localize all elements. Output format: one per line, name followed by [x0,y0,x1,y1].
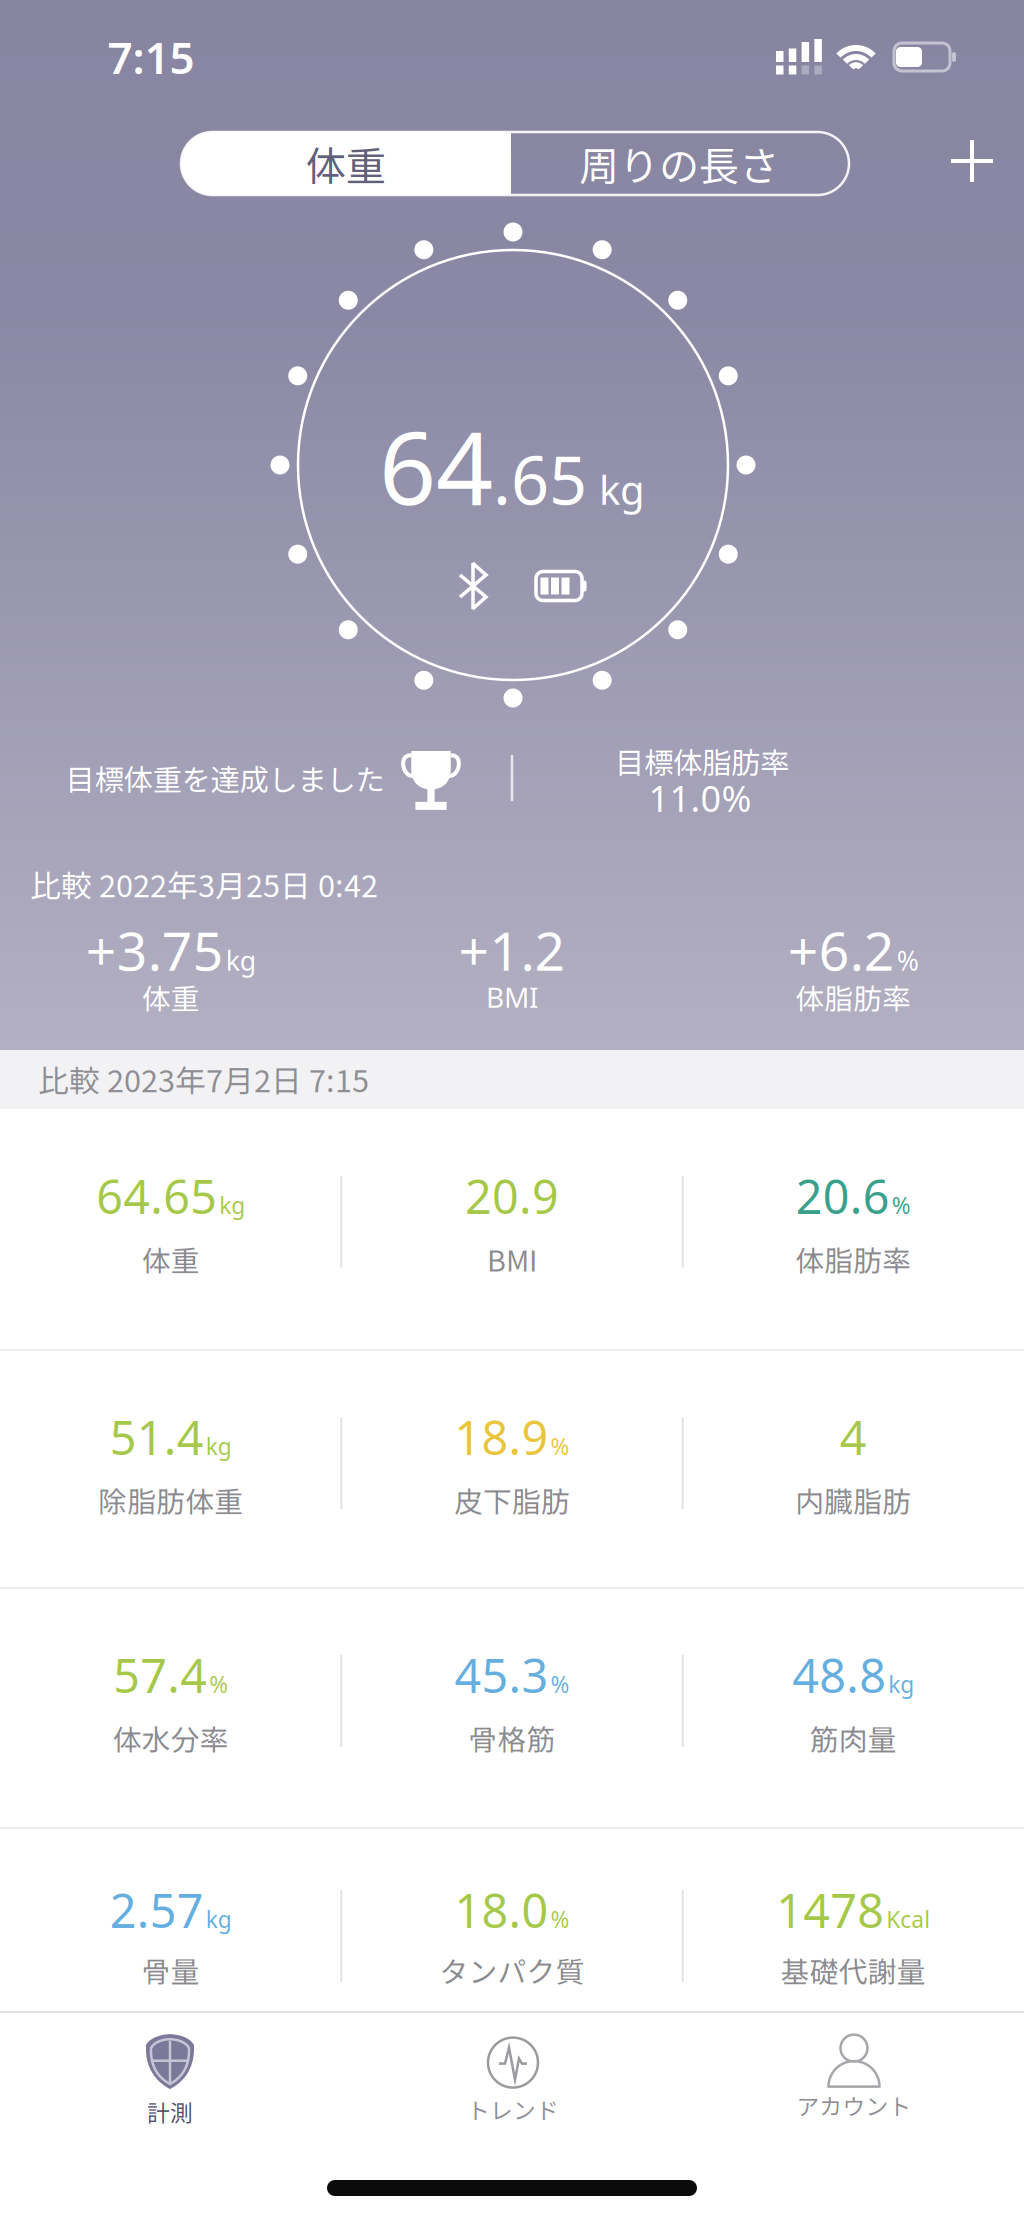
staticText: トレンド [467,2093,559,2125]
staticText: Kcal [886,1904,930,1934]
staticText: kg [888,1669,914,1699]
button[interactable]: アカウント [739,2018,969,2138]
staticText: 体脂肪率 [795,1238,911,1280]
staticText: % [550,1669,569,1699]
button[interactable]: 体重 [181,132,511,195]
staticText: 20.9 [465,1165,559,1227]
staticText: kg [599,463,645,516]
staticText: 20.6 [796,1165,890,1227]
staticText: 目標体脂肪率 [615,740,789,782]
staticText: 11.0% [648,774,751,822]
staticText: 骨格筋 [468,1717,555,1759]
button[interactable]: トレンド [398,2021,628,2141]
staticText: % [897,943,919,978]
staticText: 体重 [142,1238,200,1280]
staticText: 除脂肪体重 [98,1479,243,1521]
staticText: 骨量 [142,1949,200,1991]
staticText: 18.0 [454,1879,548,1941]
staticText: 45.3 [454,1644,548,1706]
staticText: 筋肉量 [810,1717,897,1759]
staticText: % [209,1669,228,1699]
staticText: 体水分率 [113,1717,229,1759]
button[interactable]: Add measurement [951,140,993,182]
staticText: % [550,1431,569,1461]
staticText: 内臓脂肪 [795,1479,911,1521]
staticText: 64 [379,400,493,532]
staticText: kg [206,1431,232,1461]
staticText: 比較 2022年3月25日 0:42 [30,862,378,906]
staticText: 体脂肪率 [795,976,911,1018]
staticText: kg [206,1904,232,1934]
staticText: 48.8 [792,1644,886,1706]
staticText: BMI [486,978,538,1016]
staticText: 体重 [306,134,386,192]
staticText: 計測 [147,2095,193,2128]
staticText: 目標体重を達成しました [65,757,384,799]
staticText: 64.65 [96,1165,217,1227]
staticText: +6.2 [788,915,895,985]
staticText: 4 [840,1406,867,1468]
staticText: % [892,1190,911,1220]
button[interactable]: 周りの長さ [514,132,844,195]
staticText: 比較 2023年7月2日 7:15 [38,1057,369,1101]
staticText: % [550,1904,569,1934]
staticText: 体重 [142,976,200,1018]
staticText: 2.57 [110,1879,204,1941]
staticText: +1.2 [458,915,565,985]
staticText: 18.9 [454,1406,548,1468]
staticText: BMI [487,1238,537,1280]
staticText: 57.4 [113,1644,207,1706]
staticText: .65 [493,435,587,523]
staticText: 基礎代謝量 [781,1949,926,1991]
staticText: kg [219,1190,245,1220]
staticText: +3.75 [86,915,224,985]
staticText: アカウント [796,2089,911,2121]
staticText: kg [226,943,256,978]
staticText: 1478 [776,1879,884,1941]
staticText: 51.4 [110,1406,204,1468]
staticText: 皮下脂肪 [454,1479,570,1521]
staticText: 周りの長さ [579,134,779,192]
staticText: 7:15 [107,28,194,86]
staticText: タンパク質 [439,1949,584,1991]
button[interactable]: 計測 [55,2021,285,2141]
